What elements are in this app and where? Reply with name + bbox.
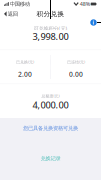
button[interactable]: 兑换记录	[0, 155, 101, 163]
staticText: 您已具备兑换资格可兑换	[23, 125, 78, 132]
staticText: 总额度(元)	[41, 93, 59, 99]
staticText: 4,000.00	[32, 99, 68, 111]
staticText: 48%	[80, 0, 90, 8]
staticText: 返回	[8, 11, 18, 17]
button[interactable]: 帮助	[90, 19, 97, 26]
staticText: 0.00	[69, 70, 83, 78]
staticText: i	[92, 19, 94, 26]
staticText: 2.00	[18, 70, 32, 78]
staticText: 已冻结(元)	[67, 59, 85, 65]
staticText: 积分兑换	[36, 10, 64, 18]
staticText: 3,998.00	[32, 30, 68, 42]
button[interactable]: 返回	[0, 8, 22, 20]
staticText: 可兑换积分(元)	[33, 25, 67, 32]
staticText: 已兑换(元)	[16, 59, 34, 65]
staticText: 中国移动	[10, 1, 30, 7]
staticText: 兑换记录	[40, 155, 60, 162]
